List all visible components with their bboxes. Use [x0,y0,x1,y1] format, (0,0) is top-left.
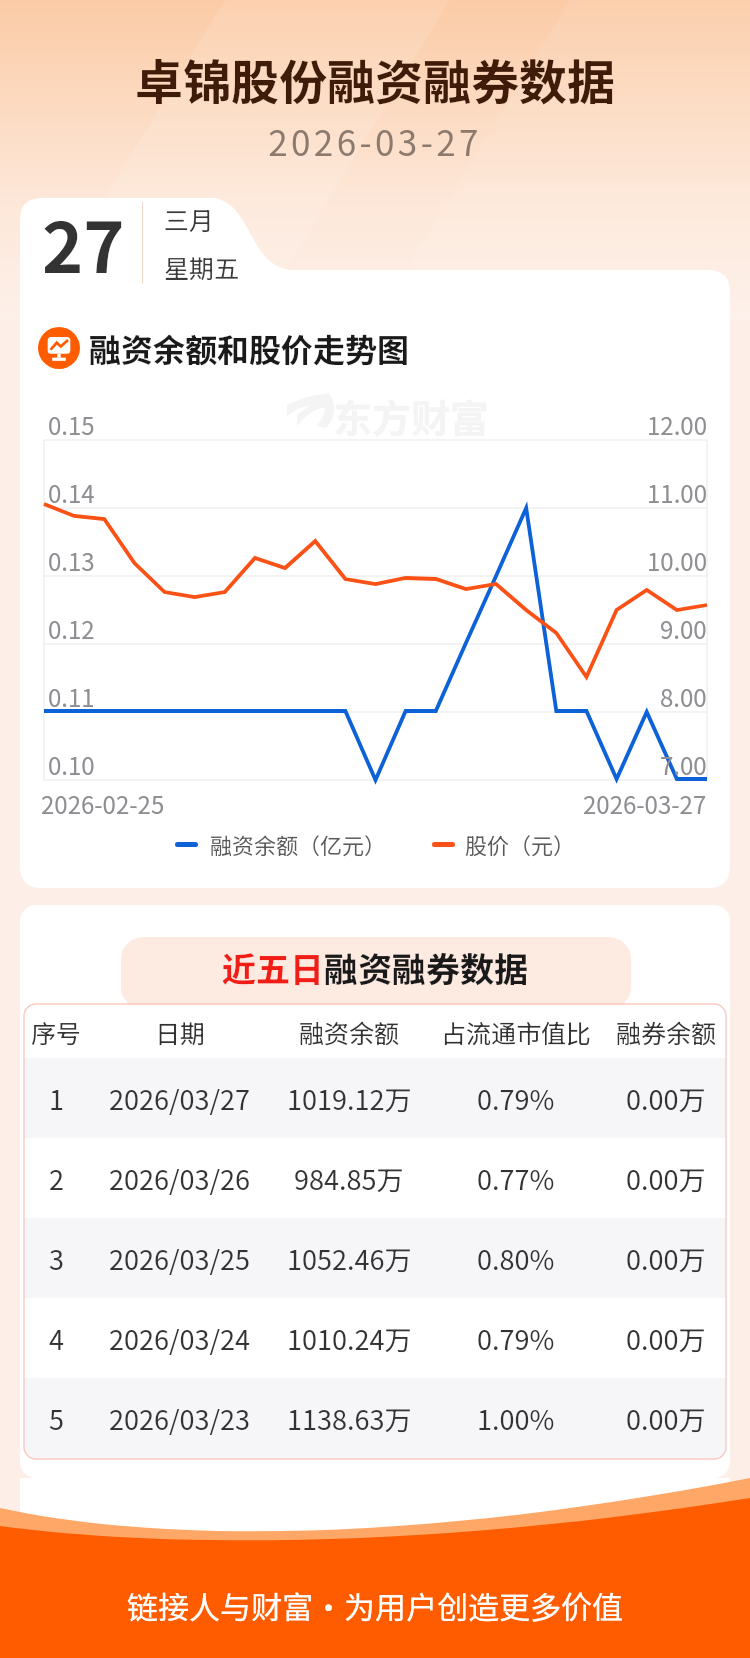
staticText: 0.15 [48,407,95,442]
staticText: 融资余额（亿元） [210,828,387,860]
staticText: 0.10 [48,747,95,782]
staticText: 1052.46万 [287,1239,412,1278]
staticText: 9.00 [660,611,707,646]
staticText: 融资余额 [299,1014,400,1050]
staticText: 2026-03-27 [0,115,750,166]
staticText: 8.00 [660,679,707,714]
button[interactable]: 走势图 [38,325,410,371]
staticText: 27 [42,192,125,293]
staticText: 7.00 [660,747,707,782]
button[interactable]: 序号 [24,1005,726,1058]
staticText: 0.80% [477,1239,555,1278]
staticText: 4 [49,1319,64,1358]
staticText: 0.00万 [626,1399,706,1438]
staticText: 1019.12万 [287,1079,412,1118]
staticText: 卓锦股份融资融券数据 [0,44,750,114]
staticText: 1010.24万 [287,1319,412,1358]
staticText: 融券余额 [616,1014,717,1050]
staticText: 0.00万 [626,1159,706,1198]
staticText: 2026/03/23 [109,1399,251,1438]
staticText: 0.77% [477,1159,555,1198]
staticText: 984.85万 [294,1159,404,1198]
staticText: 三月 [164,201,215,237]
staticText: 2026/03/27 [109,1079,251,1118]
staticText: 股价（元） [465,828,576,860]
staticText: 2026-02-25 [41,786,165,821]
button[interactable]: 2 [24,1138,726,1218]
staticText: 东方财富 [333,388,490,444]
staticText: 0.11 [48,679,95,714]
staticText: 近五日 [222,943,324,992]
staticText: 日期 [155,1014,206,1050]
staticText: 0.00万 [626,1239,706,1278]
staticText: 0.79% [477,1319,555,1358]
staticText: 2026/03/25 [109,1239,251,1278]
staticText: 11.00 [647,475,707,510]
staticText: 融资融券数据 [324,943,528,992]
staticText: 占流通市值比 [441,1014,592,1050]
staticText: 2026/03/26 [109,1159,251,1198]
staticText: 星期五 [164,249,240,285]
button[interactable]: 3 [24,1218,726,1298]
button[interactable]: 5 [24,1378,726,1458]
staticText: 0.13 [48,543,95,578]
staticText: 0.12 [48,611,95,646]
staticText: 0.14 [48,475,95,510]
staticText: 12.00 [647,407,707,442]
staticText: 10.00 [647,543,707,578]
staticText: 融资余额和股价走势图 [89,325,410,371]
button[interactable]: 1 [24,1058,726,1138]
staticText: 1 [49,1079,64,1118]
staticText: 1138.63万 [287,1399,412,1438]
staticText: 0.79% [477,1079,555,1118]
staticText: 0.00万 [626,1319,706,1358]
staticText: 1.00% [477,1399,555,1438]
other: 走势图 [38,327,80,369]
staticText: 5 [49,1399,64,1438]
staticText: 2 [49,1159,64,1198]
staticText: 3 [49,1239,64,1278]
staticText: 0.00万 [626,1079,706,1118]
staticText: 2026-03-27 [583,786,707,821]
button[interactable]: 4 [24,1298,726,1378]
staticText: 序号 [31,1014,82,1050]
staticText: 链接人与财富·为用户创造更多价值 [0,1583,750,1628]
staticText: 2026/03/24 [109,1319,251,1358]
